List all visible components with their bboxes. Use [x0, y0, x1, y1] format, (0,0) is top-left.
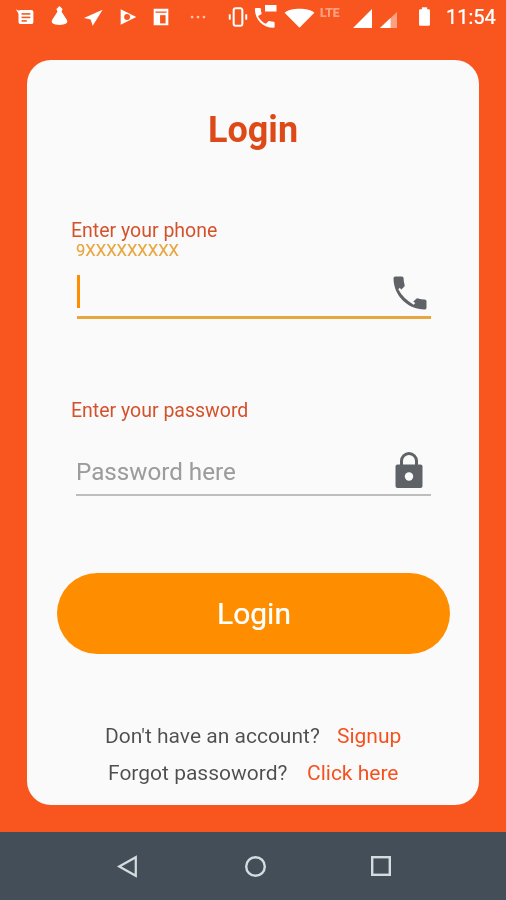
- staticText: Password here: [76, 458, 236, 486]
- button[interactable]: Home: [235, 846, 275, 886]
- staticText: Click here: [307, 761, 399, 786]
- button[interactable]: Login: [57, 573, 450, 654]
- staticText: Login: [217, 596, 291, 631]
- staticText: Don't have an account?: [105, 724, 320, 749]
- staticText: 9XXXXXXXXX: [76, 241, 179, 260]
- other: Phone: [388, 271, 432, 315]
- staticText: Signup: [337, 724, 402, 749]
- button[interactable]: Back: [107, 846, 147, 886]
- button[interactable]: Click here: [307, 761, 399, 786]
- staticText: Enter your phone: [71, 219, 218, 242]
- other: Password: [394, 450, 424, 490]
- staticText: 11:54: [446, 5, 496, 28]
- button[interactable]: Signup: [337, 724, 402, 749]
- staticText: Enter your password: [71, 399, 249, 422]
- button[interactable]: Recents: [361, 846, 401, 886]
- staticText: Forgot passoword?: [108, 761, 288, 786]
- staticText: LTE: [320, 6, 340, 20]
- staticText: Login: [0, 109, 506, 151]
